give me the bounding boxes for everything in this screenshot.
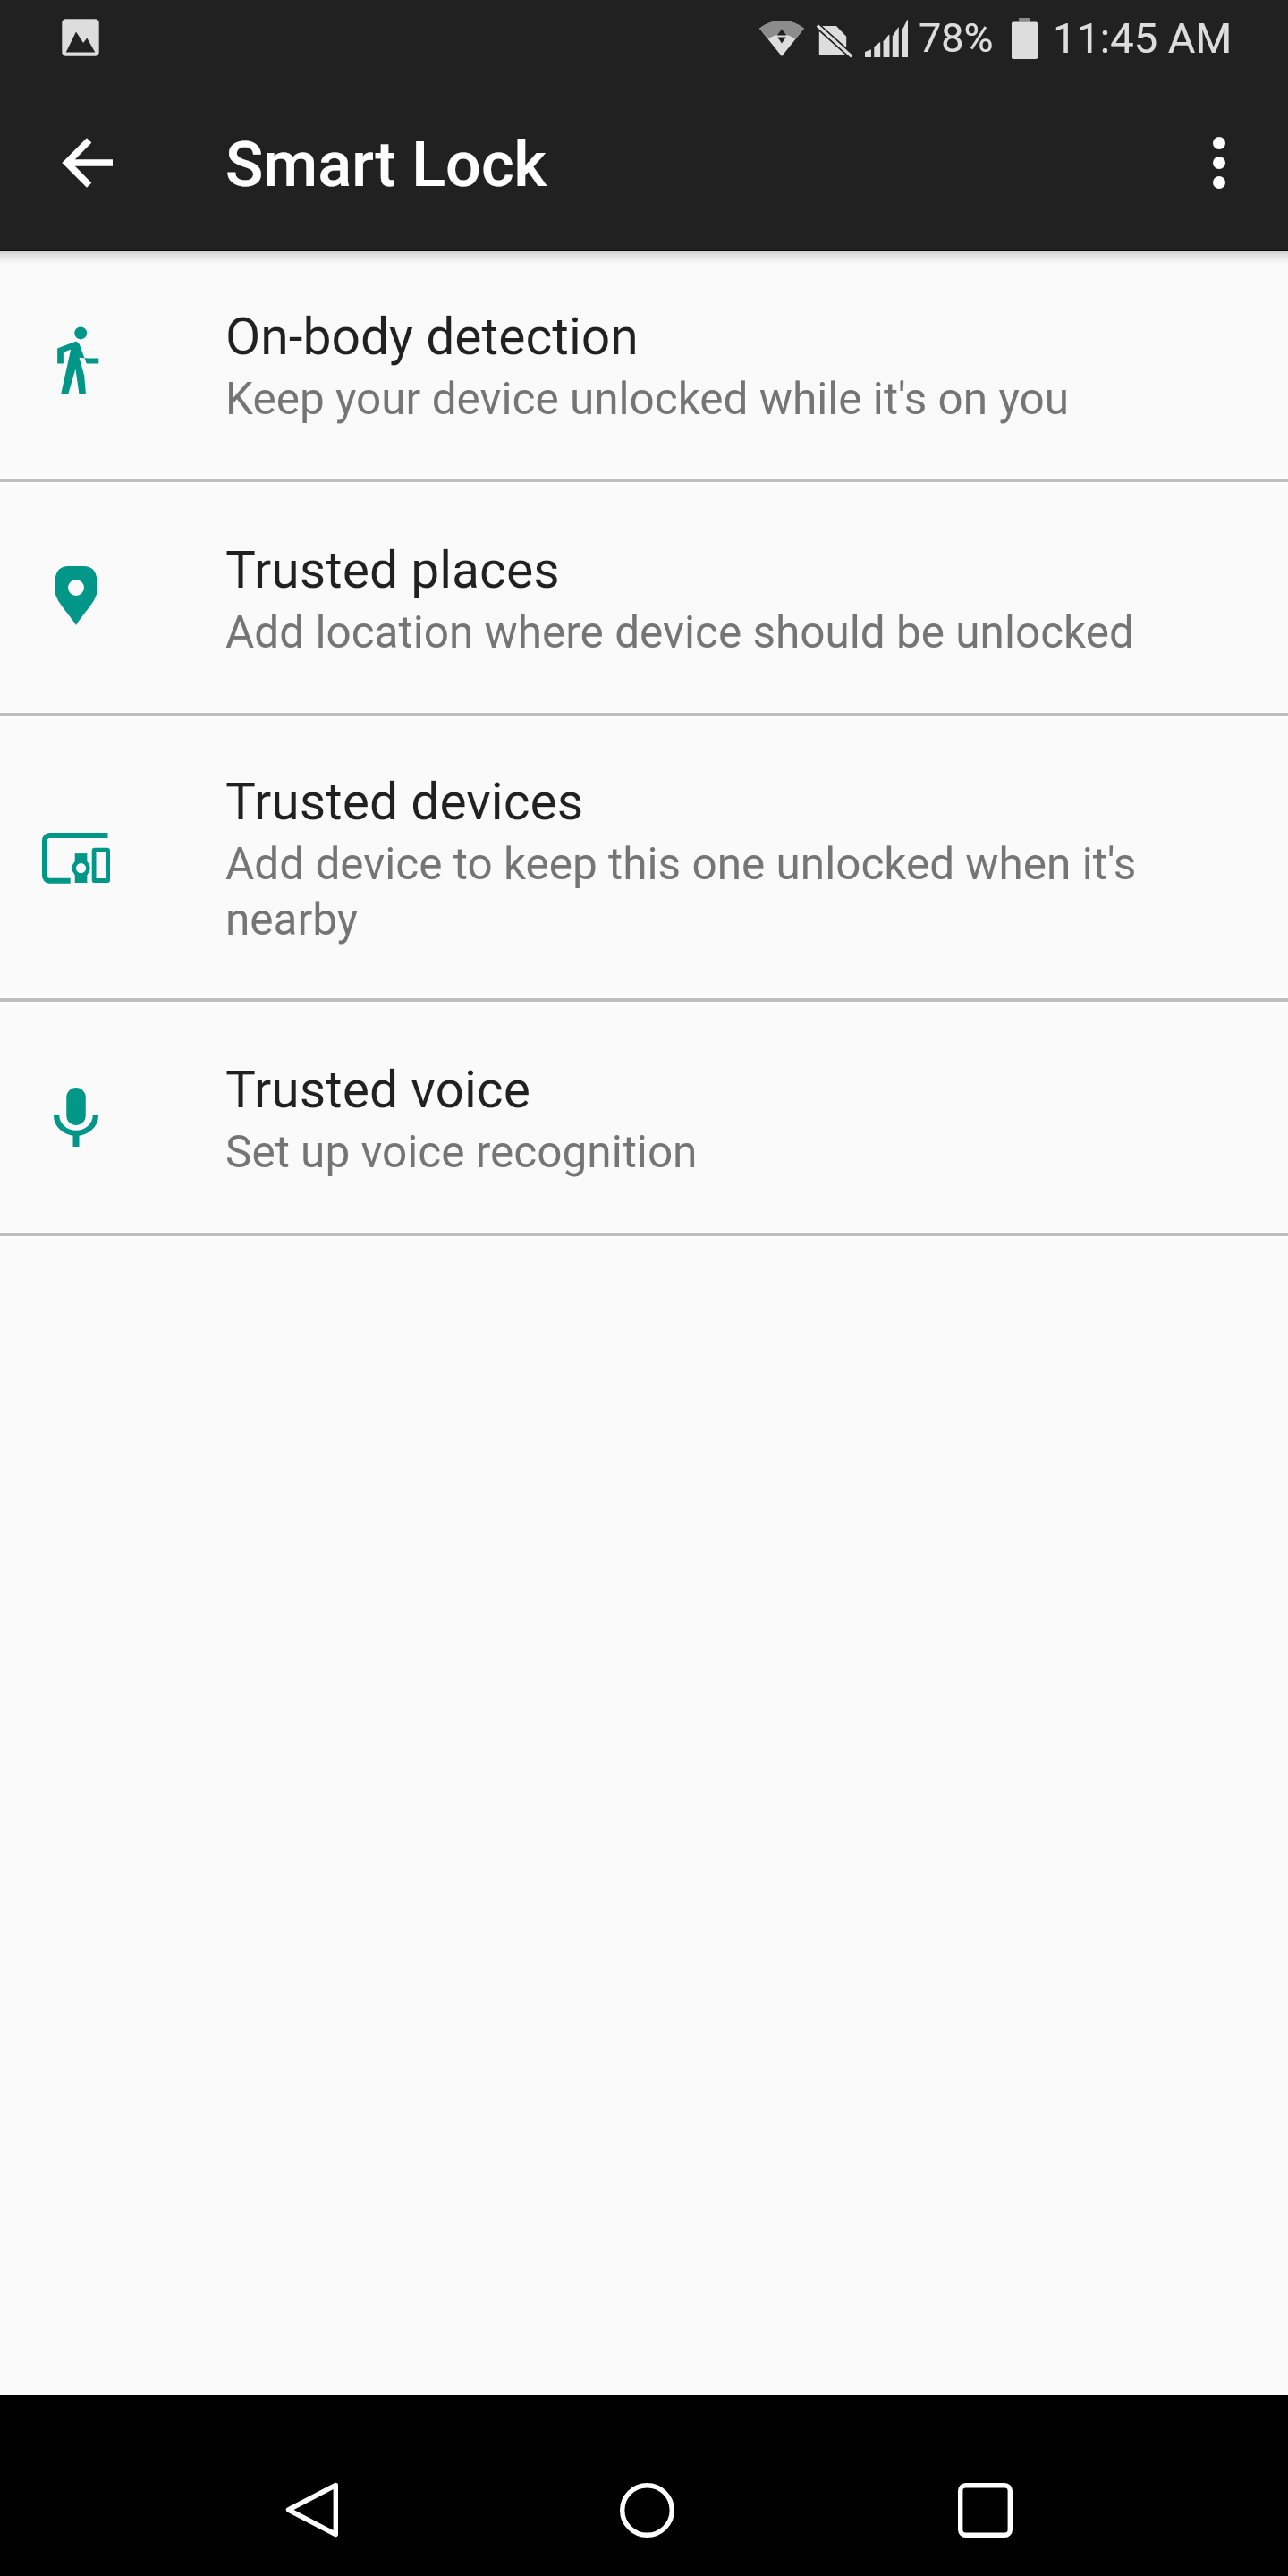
staticText: Add device to keep this one unlocked whe… xyxy=(225,835,1227,946)
staticText: Set up voice recognition xyxy=(225,1123,698,1179)
button[interactable]: On-body detection xyxy=(0,250,1288,478)
button[interactable]: Home xyxy=(575,2438,718,2576)
button[interactable]: Back xyxy=(240,2438,383,2576)
button[interactable]: More options xyxy=(1154,75,1288,250)
button[interactable]: Recent apps xyxy=(913,2438,1056,2576)
staticText: Trusted voice xyxy=(225,1060,530,1120)
staticText: On-body detection xyxy=(225,307,639,367)
staticText: Smart Lock xyxy=(225,128,547,201)
button[interactable]: Trusted voice xyxy=(0,1003,1288,1232)
staticText: 78% xyxy=(919,14,994,62)
staticText: Keep your device unlocked while it's on … xyxy=(225,370,1070,426)
staticText: Add location where device should be unlo… xyxy=(225,604,1134,659)
staticText: Trusted devices xyxy=(225,772,584,832)
staticText: 11:45 AM xyxy=(1053,13,1233,63)
button[interactable]: Trusted places xyxy=(0,483,1288,712)
button[interactable]: Navigate up xyxy=(0,75,175,250)
button[interactable]: Trusted devices xyxy=(0,717,1288,997)
staticText: Trusted places xyxy=(225,540,560,600)
